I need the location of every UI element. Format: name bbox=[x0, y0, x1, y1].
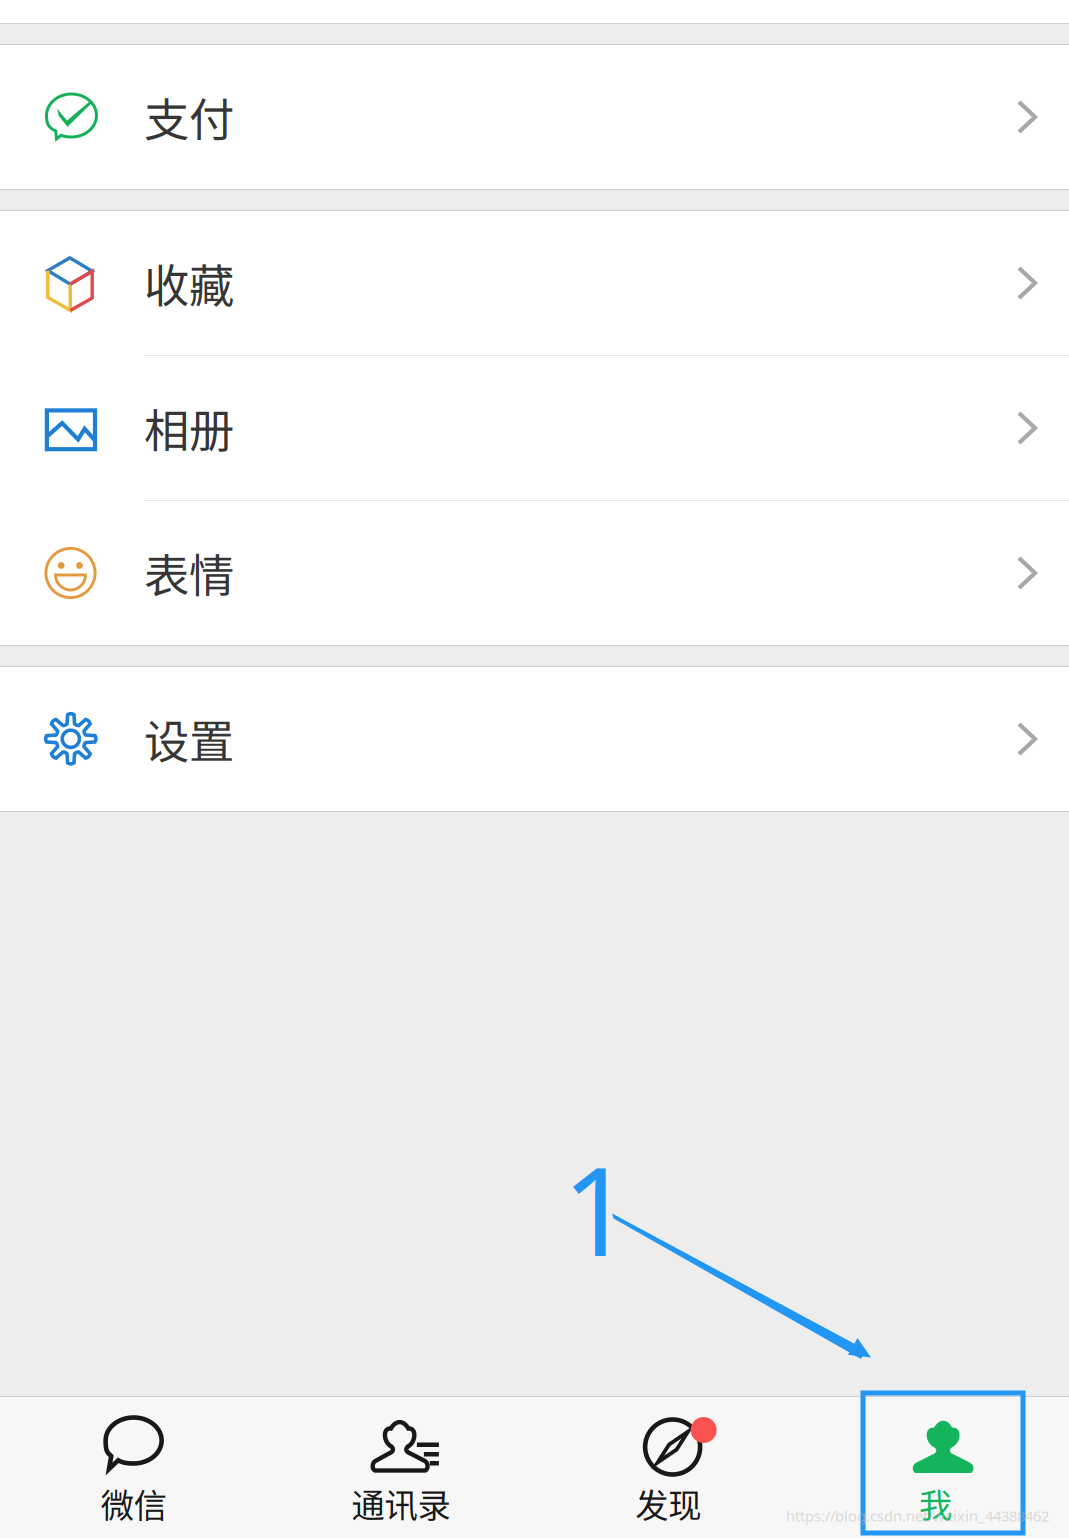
button[interactable]: 表情 bbox=[0, 501, 1069, 645]
button[interactable]: 通讯录 bbox=[267, 1397, 534, 1538]
button[interactable]: 我 bbox=[802, 1397, 1069, 1538]
staticText: 1 bbox=[562, 1127, 632, 1290]
staticText: 相册 bbox=[144, 395, 234, 461]
staticText: 收藏 bbox=[144, 250, 234, 316]
staticText: 表情 bbox=[144, 540, 234, 606]
button[interactable]: 相册 bbox=[0, 356, 1069, 500]
button[interactable]: 支付 bbox=[0, 45, 1069, 189]
staticText: 我 bbox=[919, 1479, 952, 1527]
staticText: 支付 bbox=[144, 84, 234, 150]
button[interactable]: 微信 bbox=[0, 1397, 267, 1538]
button[interactable]: 设置 bbox=[0, 667, 1069, 811]
button[interactable]: 收藏 bbox=[0, 211, 1069, 355]
staticText: https://blog.csdn.net/weixin_44388462 bbox=[786, 1506, 1049, 1525]
staticText: 设置 bbox=[144, 706, 234, 772]
staticText: 发现 bbox=[635, 1479, 701, 1527]
staticText: 通讯录 bbox=[351, 1479, 450, 1527]
button[interactable]: 发现 bbox=[534, 1397, 802, 1538]
staticText: 微信 bbox=[101, 1479, 167, 1527]
